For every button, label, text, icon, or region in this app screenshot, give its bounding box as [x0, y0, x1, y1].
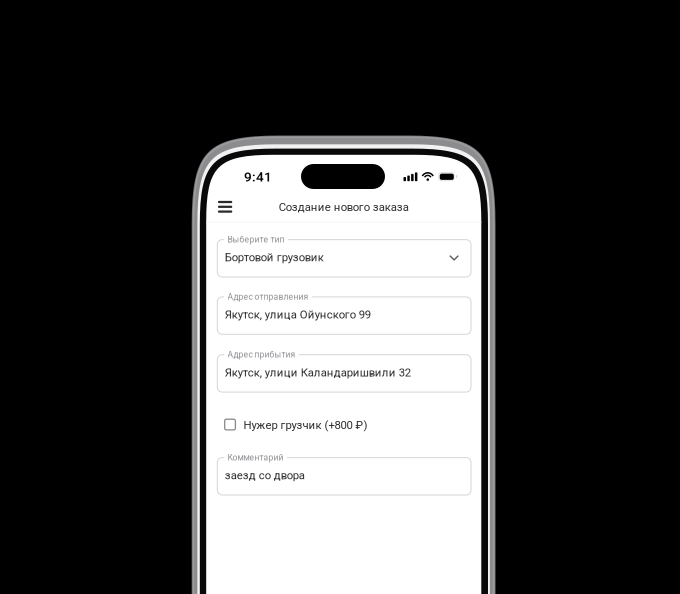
staticText: 9:41: [244, 169, 272, 185]
button[interactable]: Нужер грузчик (+800 ₽): [217, 413, 417, 436]
button[interactable]: заезд со двора: [217, 458, 471, 495]
staticText: Выберите тип: [228, 235, 285, 245]
staticText: Бортовой грузовик: [225, 251, 324, 264]
button[interactable]: Якутск, улици Каландаришвили 32: [217, 355, 471, 392]
staticText: Адрес прибытия: [228, 350, 296, 360]
button[interactable]: Menu: [209, 191, 241, 223]
button[interactable]: Бортовой грузовик: [217, 240, 471, 277]
staticText: Создание нового заказа: [279, 200, 409, 214]
staticText: Комментарий: [228, 453, 284, 463]
staticText: Якутск, улица Ойунского 99: [225, 308, 371, 321]
staticText: Адрес отправления: [228, 292, 309, 302]
staticText: Нужер грузчик (+800 ₽): [243, 418, 367, 432]
button[interactable]: Якутск, улица Ойунского 99: [217, 297, 471, 334]
staticText: Якутск, улици Каландаришвили 32: [225, 366, 411, 379]
staticText: заезд со двора: [225, 469, 305, 482]
